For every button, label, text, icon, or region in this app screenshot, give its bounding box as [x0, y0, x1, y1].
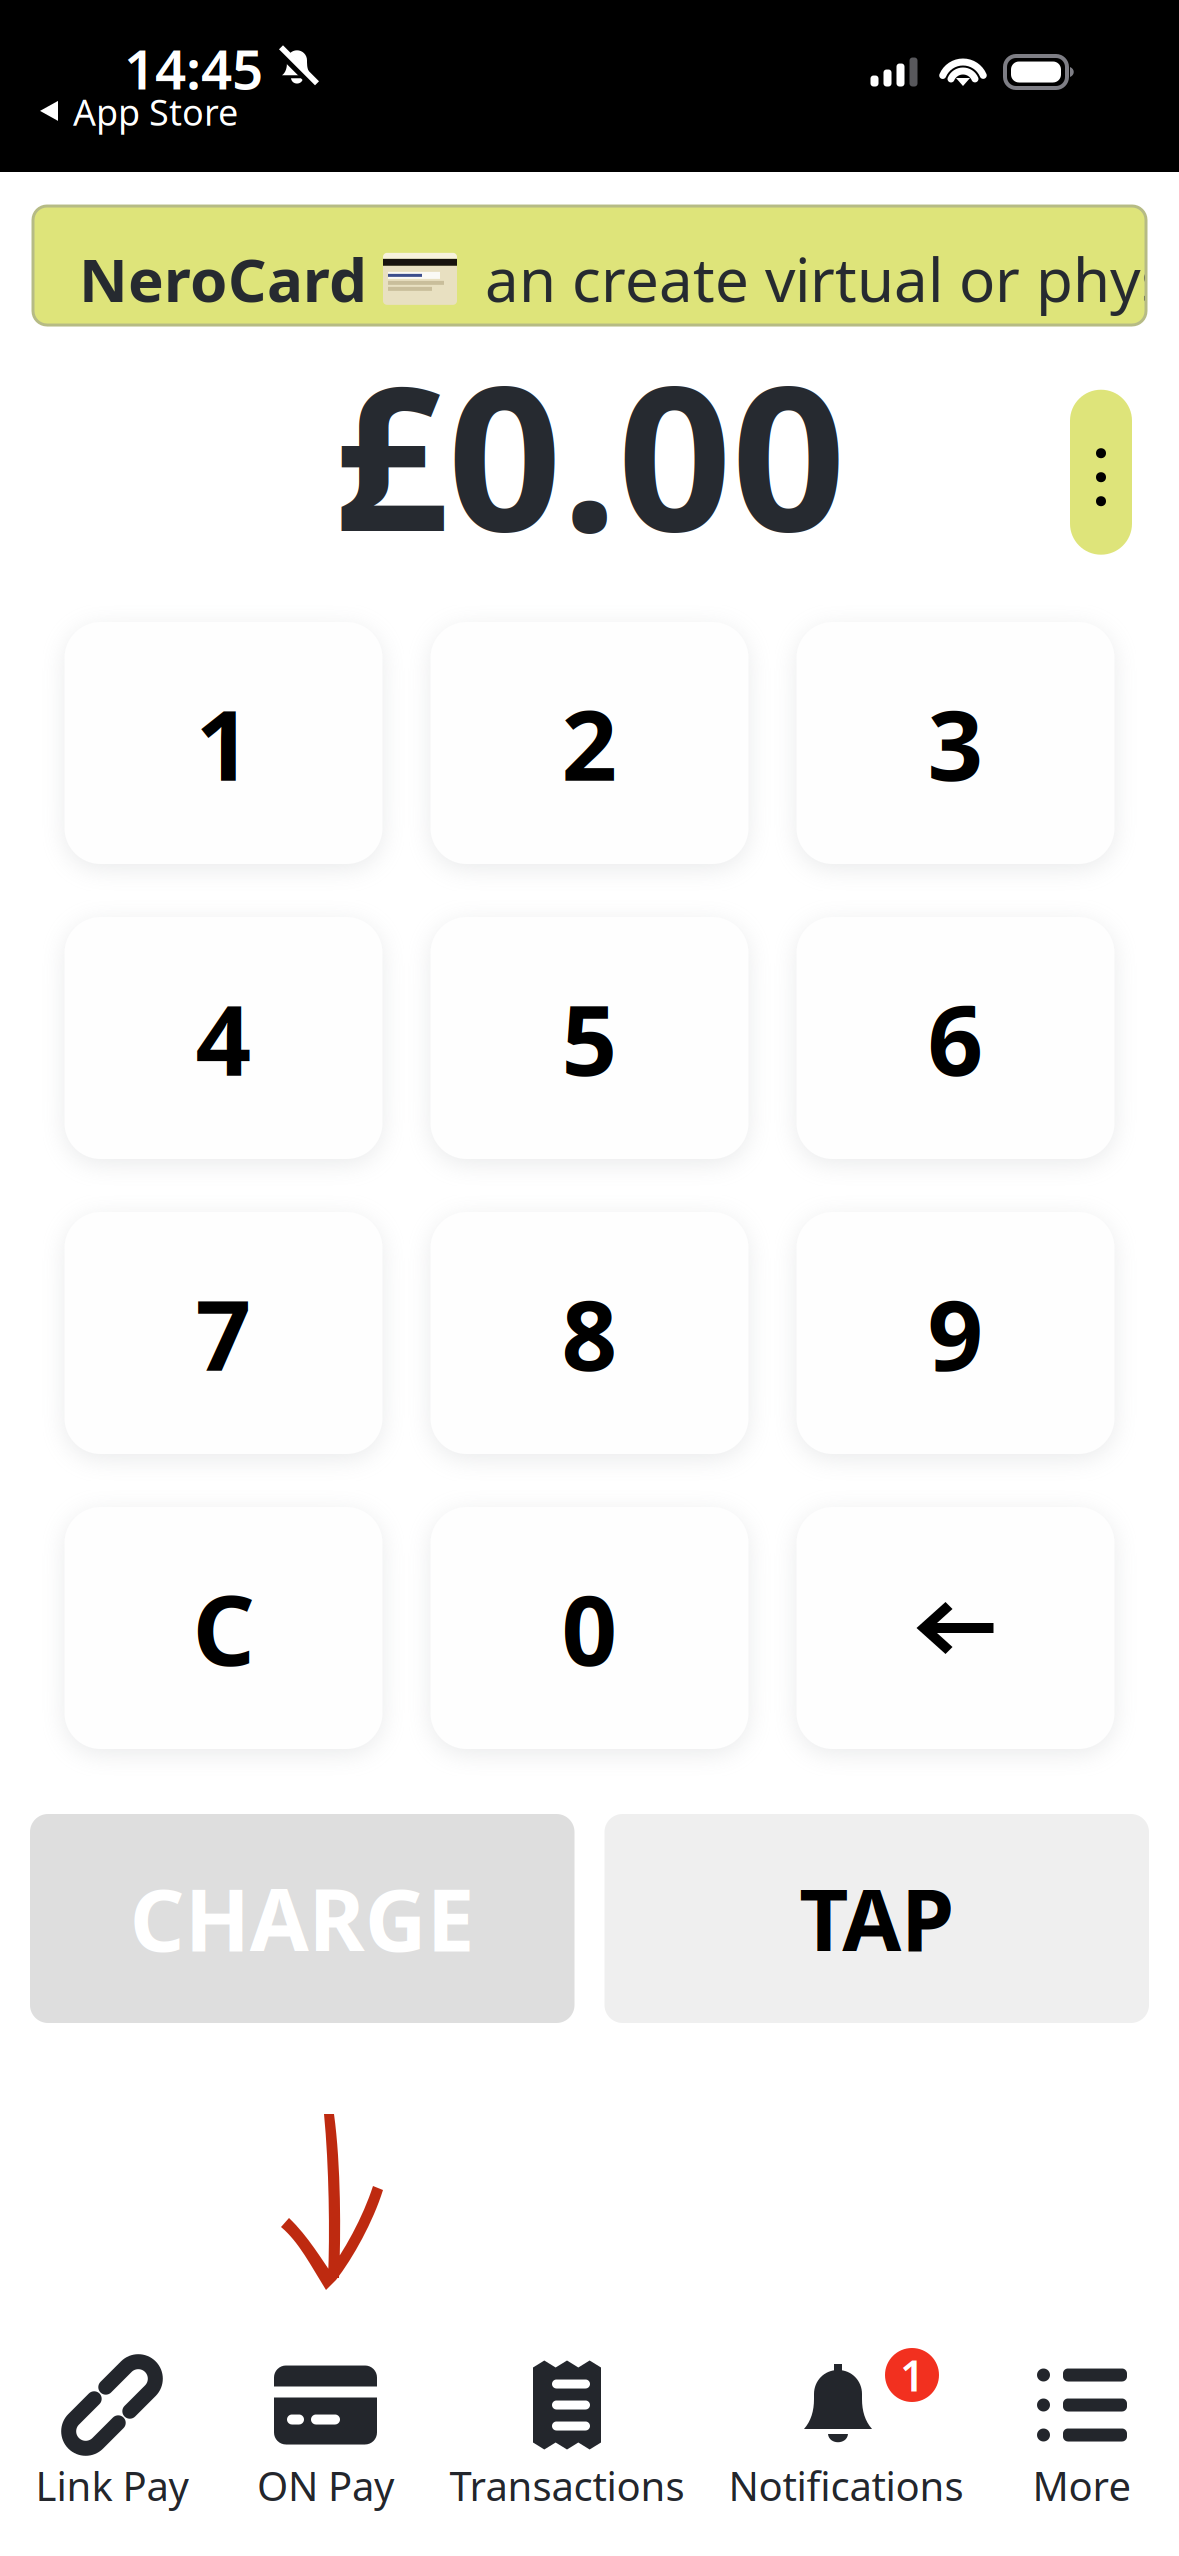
staticText: 1: [195, 678, 251, 808]
button[interactable]: 1: [64, 622, 382, 864]
staticText: App Store: [73, 88, 238, 136]
button[interactable]: TAP: [604, 1814, 1149, 2023]
staticText: CHARGE: [130, 1862, 475, 1975]
staticText: 3: [927, 678, 983, 808]
staticText: NeroCard: [79, 239, 367, 319]
staticText: 1: [900, 2347, 924, 2403]
staticText: Notifications: [728, 2459, 963, 2512]
staticText: 0: [561, 1563, 617, 1693]
button[interactable]: 9: [796, 1212, 1114, 1454]
staticText: 14:45: [124, 32, 263, 105]
button[interactable]: 5: [430, 917, 748, 1159]
button[interactable]: CHARGE: [30, 1814, 574, 2023]
staticText: 4: [195, 973, 251, 1103]
button[interactable]: 0: [430, 1507, 748, 1749]
button[interactable]: 6: [796, 917, 1114, 1159]
staticText: 8: [561, 1268, 617, 1398]
staticText: Link Pay: [35, 2459, 188, 2512]
button[interactable]: Delete: [796, 1507, 1114, 1749]
staticText: 6: [927, 973, 983, 1103]
button[interactable]: 7: [64, 1212, 382, 1454]
staticText: TAP: [799, 1862, 954, 1975]
button[interactable]: 1: [707, 2353, 985, 2556]
staticText: an create virtual or physi: [485, 239, 1179, 319]
button[interactable]: ON Pay: [224, 2353, 427, 2556]
button[interactable]: More options: [1070, 390, 1132, 555]
staticText: 2: [561, 678, 617, 808]
staticText: 9: [927, 1268, 983, 1398]
button[interactable]: More: [985, 2353, 1179, 2556]
button[interactable]: 8: [430, 1212, 748, 1454]
staticText: 5: [561, 973, 617, 1103]
staticText: £0.00: [333, 321, 845, 586]
button[interactable]: 3: [796, 622, 1114, 864]
staticText: C: [192, 1563, 254, 1693]
button[interactable]: Transactions: [427, 2353, 707, 2556]
staticText: ON Pay: [257, 2459, 394, 2512]
button[interactable]: C: [64, 1507, 382, 1749]
staticText: 7: [195, 1268, 251, 1398]
button[interactable]: Link Pay: [0, 2353, 224, 2556]
button[interactable]: 2: [430, 622, 748, 864]
staticText: More: [1032, 2459, 1131, 2512]
button[interactable]: 4: [64, 917, 382, 1159]
staticText: Transactions: [449, 2459, 684, 2512]
